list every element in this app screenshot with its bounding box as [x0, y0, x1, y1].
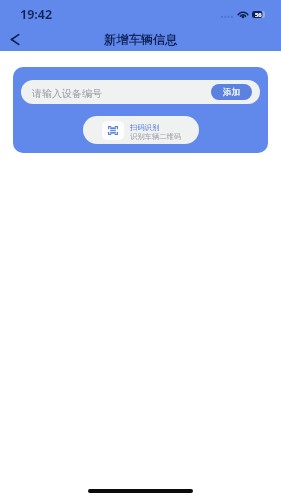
- staticText: 扫码识别: [130, 123, 160, 132]
- staticText: 识别车辆二维码: [130, 132, 182, 141]
- button[interactable]: 请输入设备编号: [21, 80, 260, 104]
- staticText: 19:42: [20, 6, 53, 23]
- staticText: 56: [255, 11, 262, 18]
- staticText: 请输入设备编号: [32, 87, 102, 100]
- staticText: 新增车辆信息: [104, 32, 178, 47]
- button[interactable]: 扫码识别: [83, 116, 199, 144]
- button[interactable]: Back: [0, 26, 30, 53]
- button[interactable]: 添加: [211, 84, 252, 100]
- staticText: 添加: [223, 87, 241, 98]
